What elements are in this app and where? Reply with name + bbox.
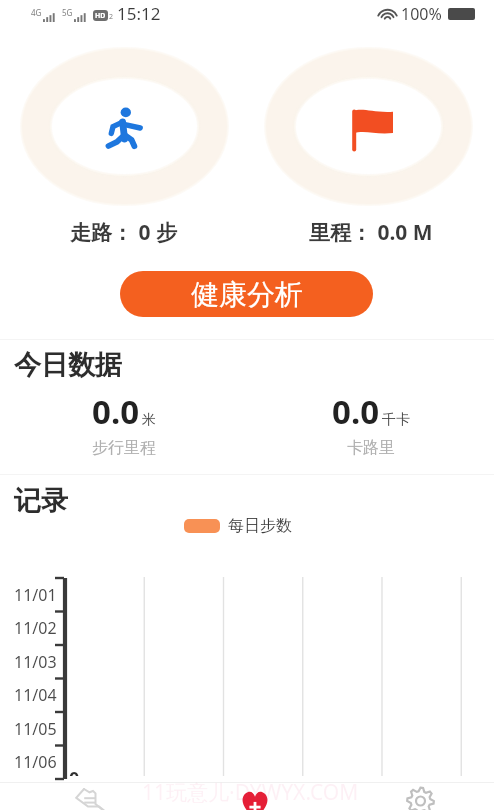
staticText: 11/02 xyxy=(14,617,57,639)
button[interactable]: Add record xyxy=(164,782,329,810)
staticText: 米 xyxy=(142,411,156,429)
button[interactable]: Settings xyxy=(329,782,494,810)
staticText: 11/01 xyxy=(14,584,57,606)
staticText: 步行里程 xyxy=(92,438,156,458)
staticText: 11玩意儿·DYWYX.COM xyxy=(142,778,359,807)
staticText: 今日数据 xyxy=(14,348,122,382)
staticText: HD xyxy=(95,11,106,21)
staticText: 走路： 0 步 xyxy=(70,218,177,247)
staticText: 11/05 xyxy=(14,718,57,740)
staticText: 11/04 xyxy=(14,684,57,706)
staticText: 0.0 xyxy=(92,389,140,434)
staticText: 15:12 xyxy=(117,2,161,25)
staticText: 健康分析 xyxy=(191,277,303,312)
staticText: 0 xyxy=(69,771,80,776)
staticText: 记录 xyxy=(14,484,68,518)
staticText: 11/06 xyxy=(14,751,57,773)
staticText: 千卡 xyxy=(382,411,410,429)
staticText: 里程： 0.0 M xyxy=(309,218,433,247)
staticText: 0.0 xyxy=(332,389,380,434)
staticText: 100% xyxy=(401,3,442,25)
staticText: 每日步数 xyxy=(228,516,292,536)
button[interactable]: 健康分析 xyxy=(120,271,373,317)
staticText: 2 xyxy=(109,12,114,22)
staticText: 11/03 xyxy=(14,651,57,673)
staticText: 卡路里 xyxy=(347,438,395,458)
button[interactable]: Records xyxy=(0,782,164,810)
staticText: 4G xyxy=(31,7,42,18)
staticText: 5G xyxy=(62,7,73,18)
